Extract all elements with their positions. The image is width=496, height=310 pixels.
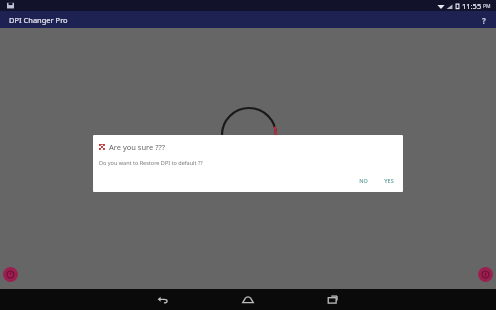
button[interactable]: Back	[150, 289, 176, 310]
staticText: Are you sure ???	[109, 142, 165, 152]
button[interactable]: NO	[356, 175, 371, 186]
staticText: DPI Changer Pro	[9, 15, 68, 25]
button[interactable]: Recents	[320, 289, 346, 310]
staticText: 11:55	[462, 1, 482, 11]
button[interactable]: Restore default DPI	[3, 267, 18, 282]
button[interactable]: YES	[381, 175, 397, 186]
button[interactable]: Home	[235, 289, 261, 310]
staticText: ?	[482, 15, 486, 26]
button[interactable]: Apply DPI	[478, 267, 493, 282]
staticText: Do you want to Restore DPI to default ??	[99, 159, 203, 166]
staticText: PM	[483, 3, 491, 10]
staticText: NO	[359, 177, 368, 184]
button[interactable]: Help	[476, 12, 492, 28]
staticText: YES	[384, 177, 394, 184]
